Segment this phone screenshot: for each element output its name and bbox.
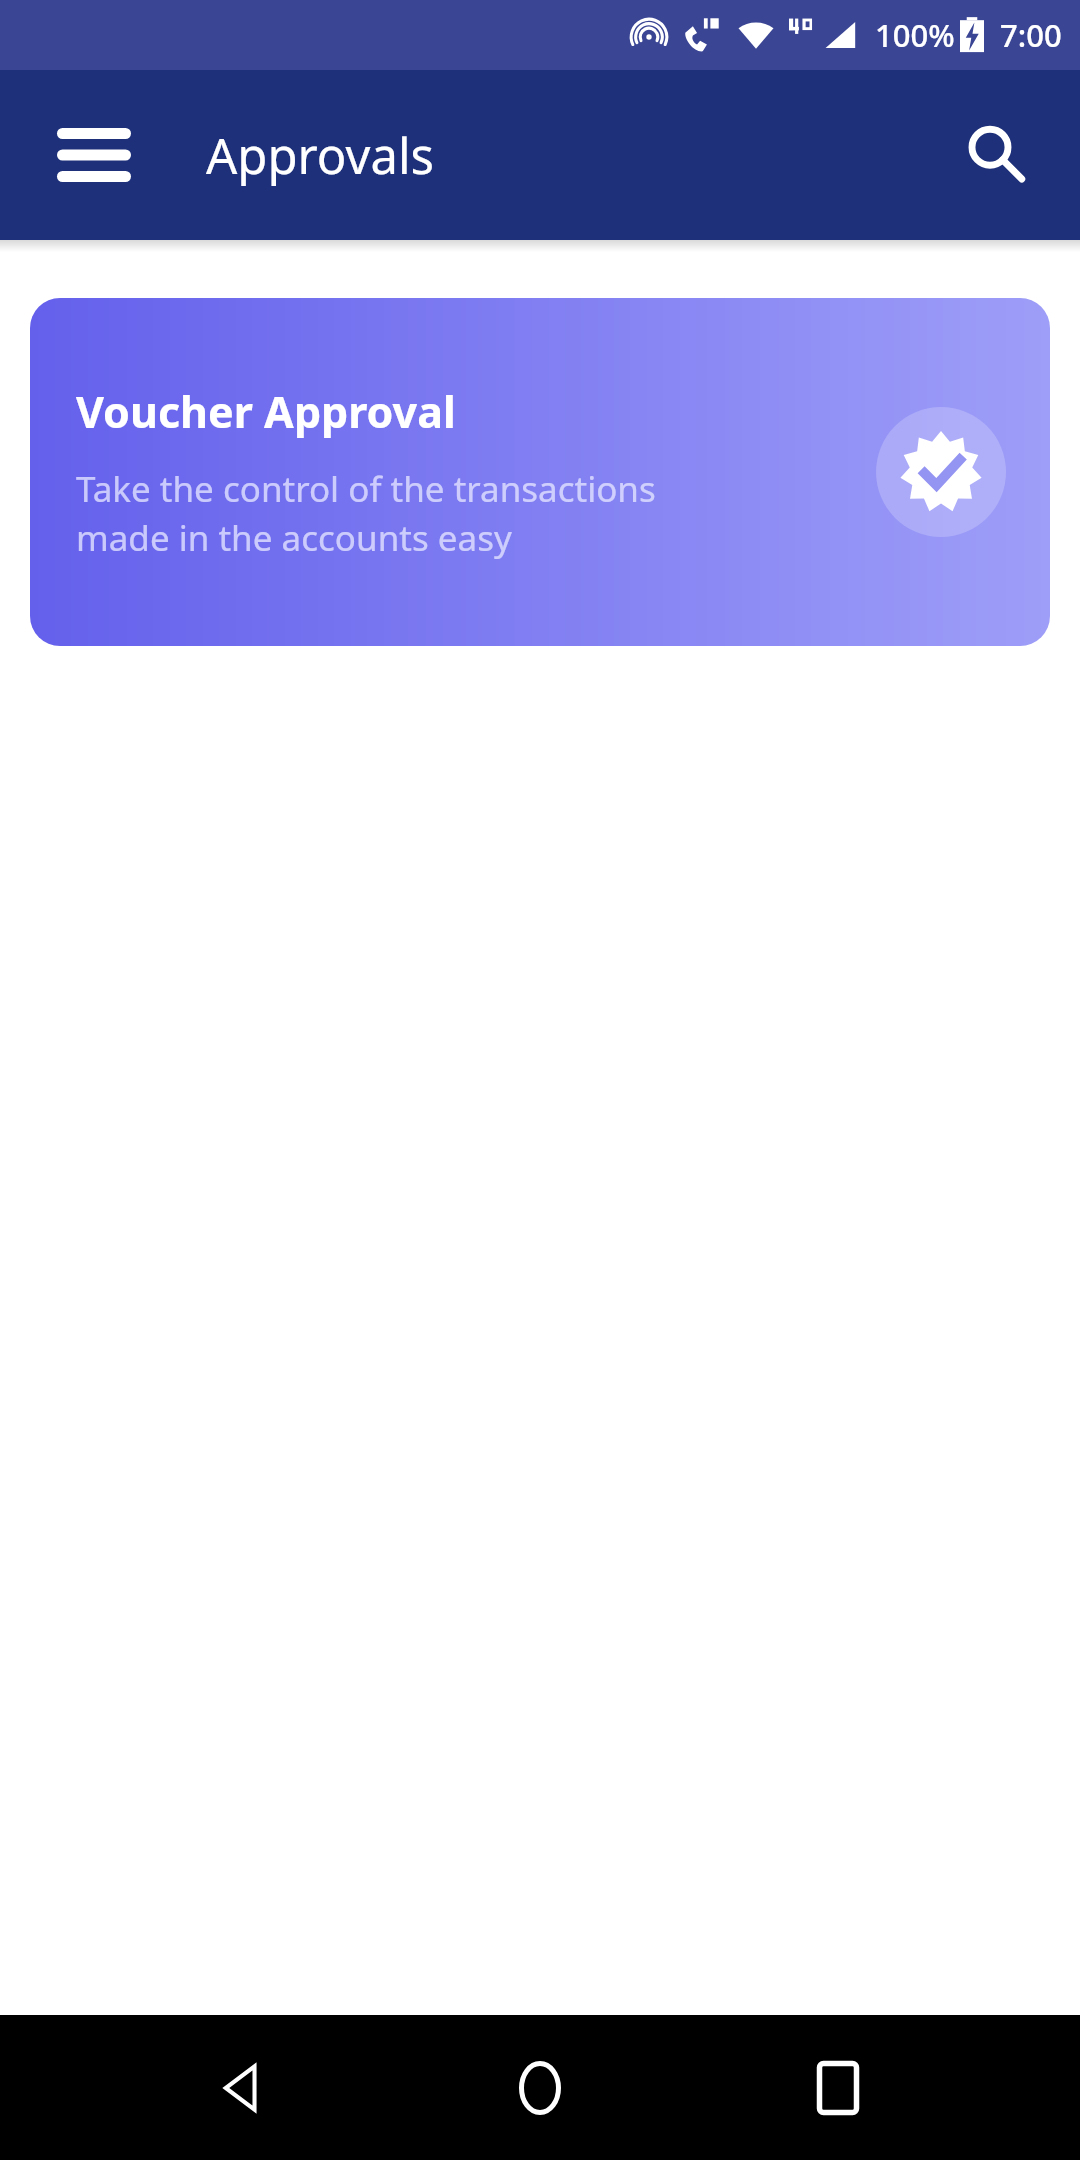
staticText: 100%	[875, 14, 955, 56]
button[interactable]: Open navigation menu	[38, 99, 150, 211]
staticText: Approvals	[206, 122, 434, 189]
button[interactable]: Voucher Approval	[30, 298, 1050, 646]
button[interactable]: Search	[940, 99, 1052, 211]
button[interactable]: Recent apps	[783, 2033, 893, 2143]
staticText: 7:00	[1000, 14, 1062, 56]
button[interactable]: Back	[188, 2033, 298, 2143]
staticText: Take the control of the transactions mad…	[76, 465, 656, 562]
staticText: Voucher Approval	[76, 382, 456, 441]
button[interactable]: Home	[485, 2033, 595, 2143]
